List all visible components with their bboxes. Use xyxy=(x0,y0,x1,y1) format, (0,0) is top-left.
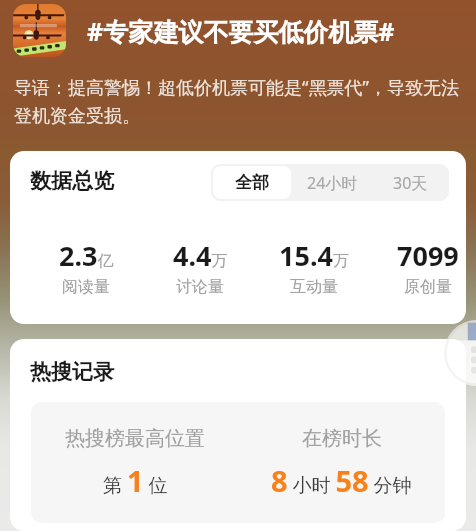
staticText: 讨论量 xyxy=(176,277,224,297)
staticText: 互动量 xyxy=(290,277,338,297)
staticText: 导语：提高警惕！超低价机票可能是“黑票代”，导致无法登机资金受损。 xyxy=(14,75,474,127)
staticText: 原创量 xyxy=(404,277,452,297)
staticText: 24小时 xyxy=(307,172,358,194)
button[interactable]: 24小时 xyxy=(293,164,371,201)
staticText: 数据总览 xyxy=(30,168,114,194)
staticText: #专家建议不要买低价机票# xyxy=(87,14,395,48)
staticText: 全部 xyxy=(235,172,269,193)
button[interactable]: 30天 xyxy=(371,164,449,201)
staticText: 8 小时 58 分钟 xyxy=(271,461,412,500)
button[interactable]: 全部 xyxy=(213,166,291,199)
staticText: 30天 xyxy=(393,172,428,194)
staticText: 热搜记录 xyxy=(30,359,114,385)
staticText: 7099 xyxy=(397,237,459,274)
button[interactable]: Quick action panel xyxy=(444,320,476,386)
staticText: 在榜时长 xyxy=(302,426,382,451)
staticText: 热搜榜最高位置 xyxy=(65,426,205,451)
staticText: 2.3亿 xyxy=(59,237,114,274)
staticText: 4.4万 xyxy=(173,237,228,274)
staticText: 第 1 位 xyxy=(103,461,168,500)
staticText: 阅读量 xyxy=(62,277,110,297)
staticText: 15.4万 xyxy=(279,237,349,274)
